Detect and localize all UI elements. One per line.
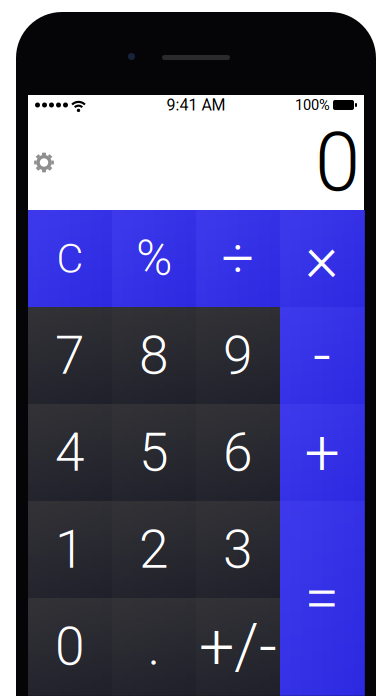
staticText: 4 [55,421,85,484]
button[interactable]: . [112,598,196,695]
button[interactable]: 3 [196,501,280,598]
button[interactable]: 8 [112,307,196,404]
staticText: + [304,416,339,489]
button[interactable]: + [280,404,364,501]
staticText: × [305,221,339,296]
staticText: % [136,230,172,287]
button[interactable]: 4 [28,404,112,501]
staticText: - [313,319,331,392]
staticText: 6 [223,421,253,484]
button[interactable]: 2 [112,501,196,598]
button[interactable]: 5 [112,404,196,501]
staticText: C [56,234,83,283]
button[interactable]: × [280,210,364,307]
staticText: 8 [139,324,169,387]
staticText: 5 [139,421,169,484]
button[interactable]: +/- [196,598,280,695]
staticText: 1 [55,518,85,581]
staticText: ÷ [221,225,254,292]
button[interactable]: 1 [28,501,112,598]
staticText: 0 [55,615,85,678]
staticText: 3 [223,518,253,581]
button[interactable]: ÷ [196,210,280,307]
button[interactable]: 0 [28,598,112,695]
staticText: 2 [139,518,169,581]
button[interactable]: C [28,210,112,307]
staticText: 100% [295,96,330,114]
button[interactable]: % [112,210,196,307]
staticText: = [304,561,339,635]
staticText: 0 [315,115,360,210]
button[interactable]: 6 [196,404,280,501]
button[interactable]: Settings [28,142,54,182]
staticText: 7 [55,324,85,387]
staticText: +/- [199,610,277,683]
staticText: . [147,615,160,678]
staticText: 9 [223,324,253,387]
button[interactable]: 9 [196,307,280,404]
button[interactable]: = [280,501,364,695]
button[interactable]: - [280,307,364,404]
button[interactable]: 7 [28,307,112,404]
staticText: 9:41 AM [166,96,225,114]
